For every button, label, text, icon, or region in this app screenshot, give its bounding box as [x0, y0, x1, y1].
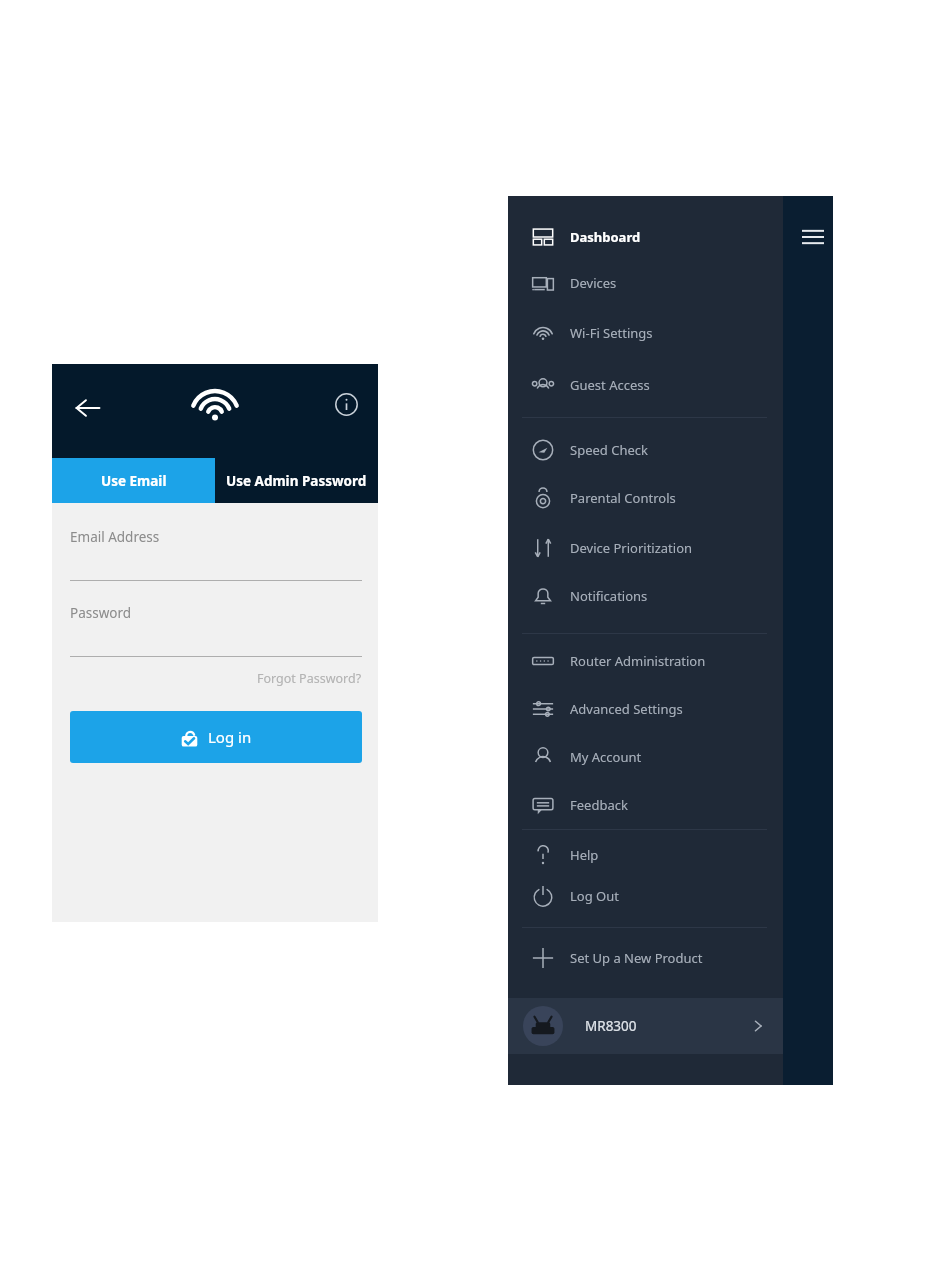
- button[interactable]: Log in: [70, 711, 362, 763]
- button[interactable]: Feedback: [508, 785, 783, 825]
- staticText: Devices: [570, 274, 617, 292]
- button[interactable]: Set Up a New Product: [508, 938, 783, 978]
- button[interactable]: Dashboard: [508, 217, 783, 257]
- staticText: Speed Check: [570, 441, 648, 459]
- button[interactable]: Parental Controls: [508, 478, 783, 518]
- staticText: Notifications: [570, 587, 648, 605]
- button[interactable]: Forgot Password?: [212, 664, 362, 692]
- button[interactable]: Help: [508, 835, 783, 875]
- button[interactable]: Devices: [508, 263, 783, 303]
- staticText: Guest Access: [570, 376, 650, 394]
- staticText: Set Up a New Product: [570, 949, 703, 967]
- staticText: Advanced Settings: [570, 700, 683, 718]
- button[interactable]: Use Admin Password: [215, 458, 378, 503]
- button[interactable]: Back: [64, 384, 112, 432]
- staticText: Log Out: [570, 887, 619, 905]
- button[interactable]: Wi-Fi Settings: [508, 313, 783, 353]
- staticText: Help: [570, 846, 599, 864]
- button[interactable]: Advanced Settings: [508, 689, 783, 729]
- staticText: Dashboard: [570, 228, 641, 246]
- staticText: Log in: [208, 727, 252, 747]
- staticText: Feedback: [570, 796, 628, 814]
- staticText: My Account: [570, 748, 642, 766]
- button[interactable]: Menu: [791, 215, 835, 259]
- staticText: Router Administration: [570, 652, 706, 670]
- button[interactable]: My Account: [508, 737, 783, 777]
- button[interactable]: Notifications: [508, 576, 783, 616]
- button[interactable]: Speed Check: [508, 430, 783, 470]
- staticText: Wi-Fi Settings: [570, 324, 653, 342]
- staticText: Use Email: [101, 472, 167, 490]
- button[interactable]: Information: [324, 382, 368, 426]
- button[interactable]: Device Prioritization: [508, 528, 783, 568]
- staticText: Device Prioritization: [570, 539, 693, 557]
- staticText: Parental Controls: [570, 489, 676, 507]
- button[interactable]: Router Administration: [508, 641, 783, 681]
- button[interactable]: Guest Access: [508, 365, 783, 405]
- button[interactable]: Log Out: [508, 876, 783, 916]
- staticText: Password: [70, 604, 132, 622]
- staticText: Forgot Password?: [257, 670, 362, 687]
- staticText: Use Admin Password: [226, 472, 367, 490]
- button[interactable]: MR8300: [508, 998, 783, 1054]
- staticText: Email Address: [70, 528, 160, 546]
- button[interactable]: Use Email: [52, 458, 215, 503]
- staticText: MR8300: [585, 1017, 637, 1035]
